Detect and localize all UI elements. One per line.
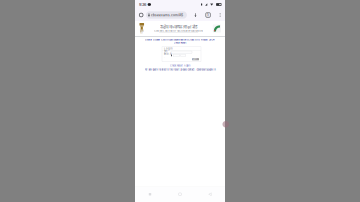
button[interactable]: Home xyxy=(136,9,146,21)
staticText: 5 xyxy=(207,13,209,17)
staticText: Check Result Again xyxy=(170,64,190,67)
staticText: 9:36 xyxy=(139,2,146,7)
staticText: D.O.B. xyxy=(164,53,171,58)
button[interactable]: Tabs xyxy=(204,9,212,21)
staticText: Senior School Certificate Examination (C… xyxy=(145,38,215,41)
staticText: cbseexams.com/AS xyxy=(151,13,183,17)
staticText: Roll No. xyxy=(164,49,168,55)
staticText: For any query related to the result plea… xyxy=(144,68,215,71)
button[interactable]: cbseexams.com/AS xyxy=(146,11,187,19)
staticText: CENTRAL BOARD OF SECONDARY EDUCATION xyxy=(154,30,203,32)
staticText: Login xyxy=(164,47,173,50)
staticText: केंद्रीय माध्यमिक शिक्षा बोर्ड xyxy=(160,24,197,30)
staticText: सत्यमेव जयते xyxy=(140,30,144,34)
staticText: Submit xyxy=(192,58,199,60)
button[interactable]: Submit xyxy=(192,58,199,60)
button[interactable]: More options xyxy=(217,9,224,21)
button[interactable]: Downloads xyxy=(191,9,199,21)
button[interactable]: Recent apps xyxy=(135,187,165,201)
button[interactable]: Check Result Again xyxy=(170,64,190,67)
staticText: Check Result xyxy=(173,41,186,44)
